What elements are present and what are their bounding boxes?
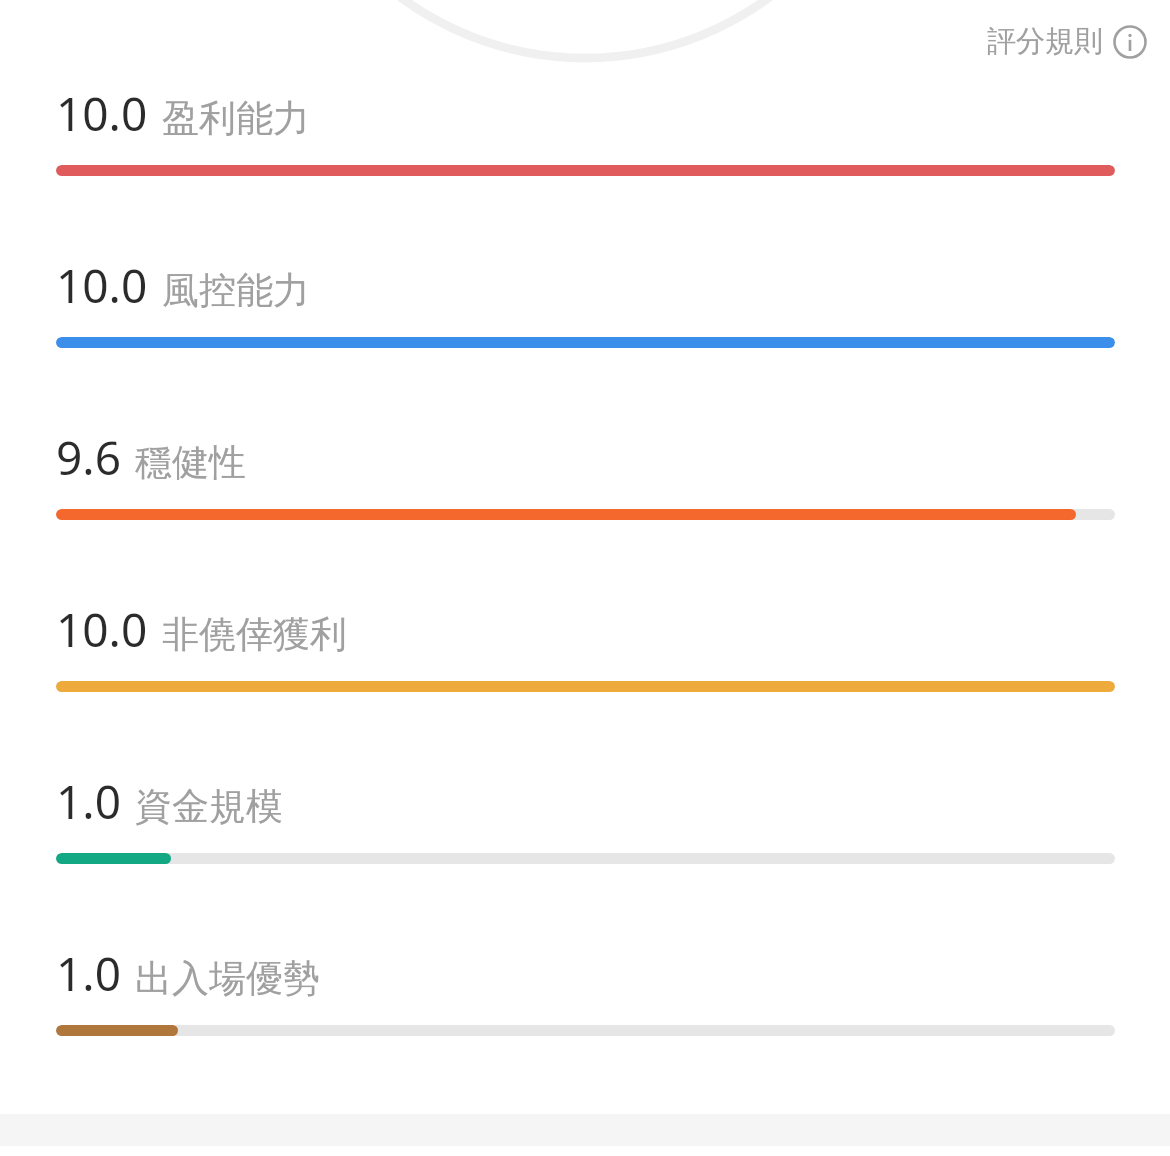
staticText: 評分規則 [987,23,1103,60]
button[interactable]: 1.0 [0,770,1170,942]
staticText: 10.0 [56,598,148,661]
button[interactable]: 10.0 [0,254,1170,426]
staticText: 1.0 [56,942,121,1005]
staticText: 盈利能力 [162,95,310,142]
button[interactable]: 10.0 [0,598,1170,770]
staticText: 10.0 [56,254,148,317]
button[interactable]: 10.0 [0,82,1170,254]
staticText: 9.6 [56,426,121,489]
staticText: 出入場優勢 [135,955,320,1002]
staticText: 非僥倖獲利 [162,611,347,658]
staticText: 1.0 [56,770,121,833]
other: 評分規則說明 [1113,25,1147,59]
staticText: 資金規模 [135,783,283,830]
staticText: 穩健性 [135,439,246,486]
staticText: 風控能力 [162,267,310,314]
button[interactable]: 1.0 [0,942,1170,1114]
button[interactable]: 評分規則 [983,17,1151,66]
button[interactable]: 9.6 [0,426,1170,598]
staticText: 10.0 [56,82,148,145]
